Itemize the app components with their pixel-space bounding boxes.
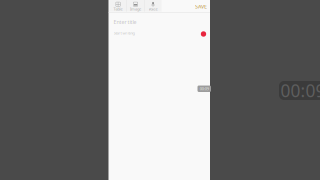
button[interactable]: Table: [109, 0, 127, 12]
staticText: SAVE: [195, 3, 207, 10]
button[interactable]: Voice: [144, 0, 162, 12]
button[interactable]: SAVE: [192, 1, 210, 11]
staticText: 00:09: [200, 86, 209, 91]
staticText: Enter title: [113, 18, 136, 25]
staticText: 00:09: [280, 79, 320, 102]
staticText: Start writing: [113, 30, 134, 36]
button[interactable]: Record: [201, 31, 206, 37]
staticText: Voice: [149, 6, 158, 12]
button[interactable]: Image: [127, 0, 144, 12]
staticText: Image: [130, 6, 141, 12]
staticText: Table: [113, 6, 122, 12]
